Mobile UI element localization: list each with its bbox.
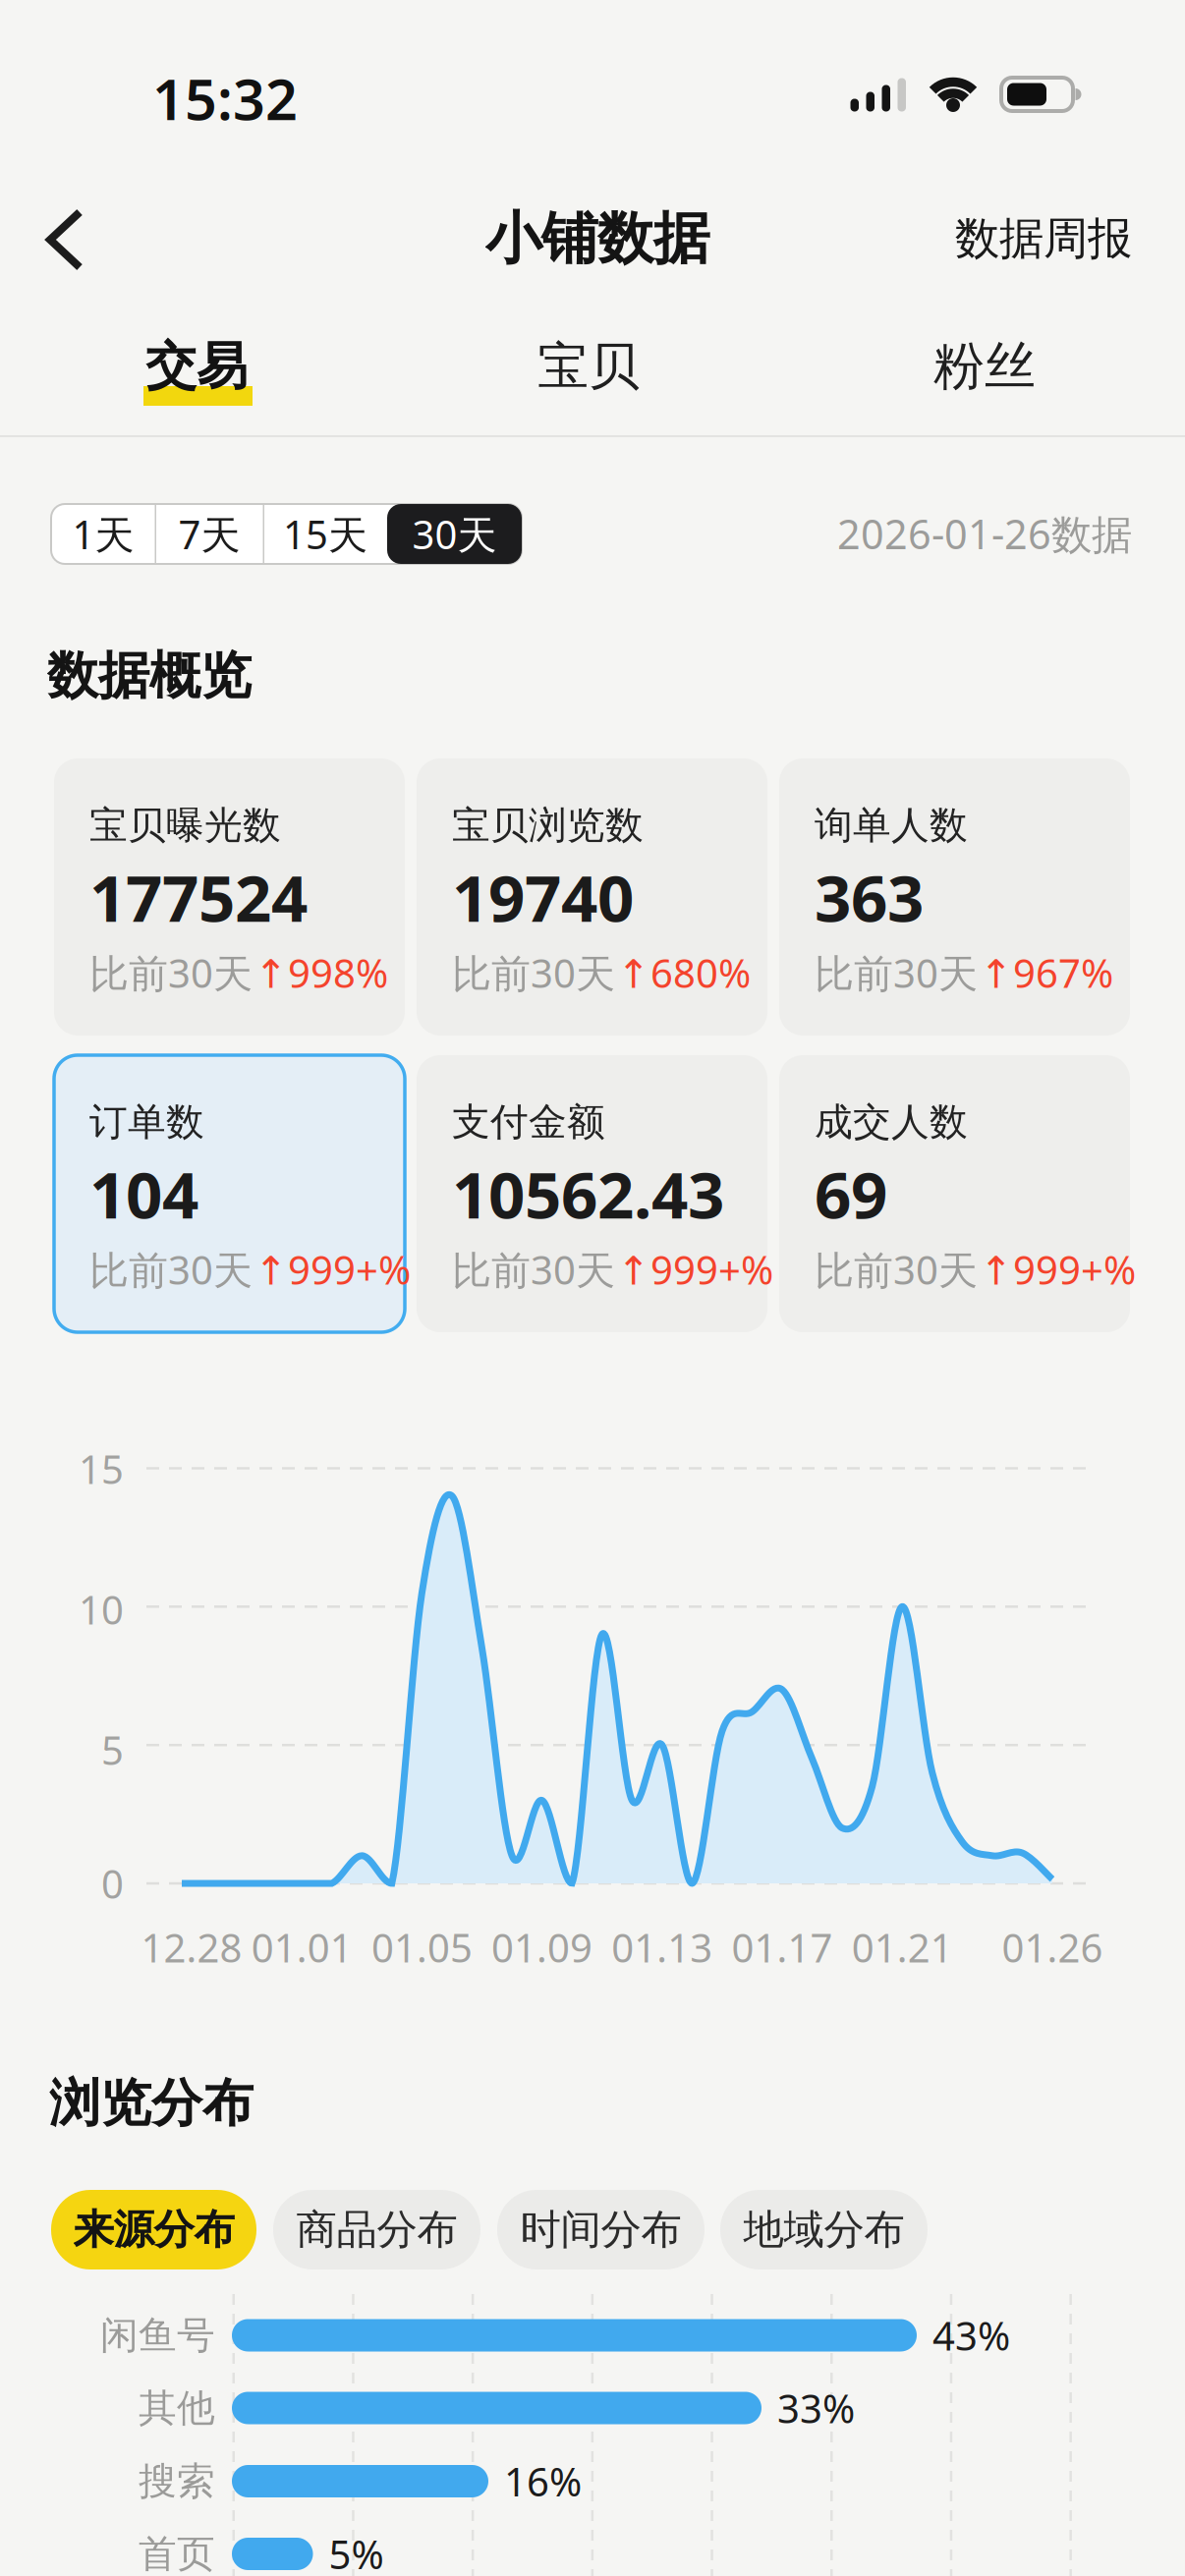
button[interactable]: 成交人数 [779,1055,1130,1332]
staticText: 时间分布 [520,2205,681,2255]
staticText: 首页 [139,2531,215,2576]
staticText: 16% [504,2455,582,2507]
staticText: 搜索 [139,2458,215,2505]
staticText: 69 [815,1151,887,1236]
staticText: 33% [777,2382,855,2434]
button[interactable]: 时间分布 [497,2190,705,2269]
staticText: 数据周报 [955,211,1132,266]
staticText: 商品分布 [296,2205,457,2255]
staticText: 0 [101,1857,124,1909]
staticText: 2026-01-26数据 [837,507,1132,560]
staticText: 支付金额 [452,1099,605,1145]
staticText: 7天 [178,508,240,560]
button[interactable]: 粉丝 [896,325,1073,408]
staticText: 01.21 [852,1921,953,1973]
staticText: 闲鱼号 [100,2312,215,2359]
staticText: 01.17 [732,1921,833,1973]
staticText: 比前30天 [815,1243,978,1295]
staticText: 363 [815,854,924,940]
staticText: 01.01 [251,1921,352,1973]
button[interactable]: 7天 [156,504,262,564]
button[interactable]: 1天 [52,504,155,564]
staticText: 01.26 [1002,1921,1103,1973]
staticText: 01.09 [491,1921,593,1973]
button[interactable]: 15天 [264,504,386,564]
button[interactable]: 数据周报 [876,211,1132,266]
staticText: 宝贝 [537,335,640,398]
staticText: 30天 [412,508,497,560]
staticText: 其他 [139,2385,215,2431]
staticText: 5 [101,1724,124,1776]
staticText: 10562.43 [452,1151,724,1236]
staticText: ↑999+% [254,1243,411,1295]
button[interactable]: 来源分布 [51,2190,256,2269]
staticText: 数据概览 [47,645,252,707]
staticText: 15:32 [152,61,298,136]
button[interactable]: 30天 [387,504,522,564]
staticText: 小铺数据 [485,204,709,273]
staticText: ↑999+% [617,1243,773,1295]
button[interactable]: 宝贝 [500,325,677,408]
staticText: 粉丝 [933,335,1036,398]
staticText: 宝贝浏览数 [452,802,644,849]
button[interactable]: 商品分布 [273,2190,480,2269]
staticText: 177524 [89,854,308,940]
staticText: 104 [89,1151,198,1236]
staticText: 10 [79,1583,124,1635]
staticText: 5% [329,2528,384,2576]
staticText: 比前30天 [89,946,253,999]
button[interactable]: 交易 [108,325,285,408]
staticText: ↑999+% [980,1243,1136,1295]
staticText: ↑680% [617,946,751,999]
staticText: 比前30天 [89,1243,253,1295]
staticText: 01.13 [611,1921,713,1973]
staticText: 43% [932,2309,1010,2361]
staticText: 19740 [452,854,634,940]
staticText: 询单人数 [815,802,968,849]
staticText: 地域分布 [743,2205,904,2255]
staticText: 交易 [145,335,248,398]
staticText: 比前30天 [815,946,978,999]
staticText: 15 [79,1443,124,1495]
button[interactable]: 宝贝浏览数 [417,758,767,1036]
button[interactable]: 地域分布 [720,2190,928,2269]
staticText: ↑967% [980,946,1113,999]
staticText: 浏览分布 [49,2072,254,2135]
staticText: 来源分布 [73,2205,234,2255]
staticText: 12.28 [141,1921,242,1973]
staticText: 宝贝曝光数 [89,802,281,849]
button[interactable]: 询单人数 [779,758,1130,1036]
staticText: 订单数 [89,1099,204,1145]
staticText: 比前30天 [452,1243,615,1295]
button[interactable]: 订单数 [54,1055,405,1332]
button[interactable]: Back [32,196,101,284]
button[interactable]: 支付金额 [417,1055,767,1332]
staticText: 1天 [72,508,134,560]
staticText: 01.05 [371,1921,473,1973]
staticText: ↑998% [254,946,388,999]
staticText: 成交人数 [815,1099,968,1145]
staticText: 比前30天 [452,946,615,999]
staticText: 15天 [283,508,367,560]
button[interactable]: 宝贝曝光数 [54,758,405,1036]
